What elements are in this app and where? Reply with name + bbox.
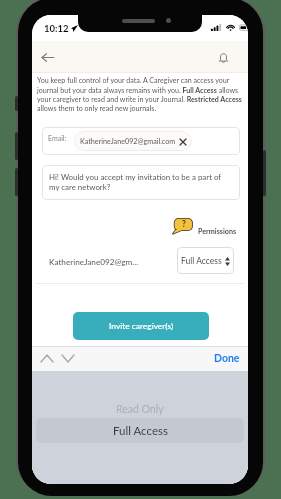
- staticText: KatherineJane092@gm...: [49, 257, 139, 267]
- button[interactable]: Done: [214, 352, 240, 365]
- staticText: Full Access: [113, 424, 168, 438]
- staticText: Done: [214, 352, 240, 365]
- button[interactable]: ?: [172, 217, 248, 239]
- staticText: Invite caregiver(s): [109, 321, 174, 331]
- staticText: ?: [182, 219, 186, 229]
- button[interactable]: Notifications: [213, 47, 234, 68]
- button[interactable]: Back: [37, 47, 58, 68]
- staticText: Read Only: [116, 403, 164, 416]
- staticText: 10:12: [44, 23, 69, 34]
- button[interactable]: Full Access: [32, 418, 248, 443]
- staticText: Permissions: [198, 227, 237, 236]
- staticText: Full Access: [181, 256, 222, 266]
- staticText: Hi! Would you accept my invitation to be…: [49, 172, 229, 192]
- staticText: You keep full control of your data. A Ca…: [37, 76, 244, 112]
- button[interactable]: Next field: [57, 348, 78, 369]
- button[interactable]: Read Only: [32, 399, 248, 420]
- button[interactable]: Hi! Would you accept my invitation to be…: [42, 165, 240, 200]
- staticText: Email:: [48, 134, 67, 142]
- button[interactable]: Full Access: [177, 247, 234, 274]
- button[interactable]: Invite caregiver(s): [73, 312, 209, 340]
- button[interactable]: KatherineJane092@gmail.com: [80, 131, 186, 151]
- button[interactable]: Previous field: [36, 348, 57, 369]
- staticText: KatherineJane092@gmail.com: [80, 137, 176, 146]
